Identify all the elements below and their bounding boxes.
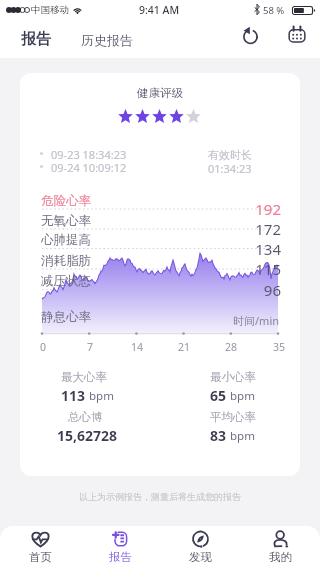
staticText: 时间/min <box>233 313 280 328</box>
staticText: 115 <box>235 259 281 279</box>
staticText: 192 <box>235 199 281 219</box>
button[interactable]: 发现 <box>160 526 240 569</box>
staticText: 15,62728 <box>57 426 118 445</box>
staticText: 报告 <box>21 30 51 49</box>
staticText: 113 <box>61 386 86 405</box>
staticText: 以上为示例报告，测量后将生成您的报告 <box>0 491 320 502</box>
staticText: 心肺提高 <box>41 232 91 248</box>
staticText: 09-24 10:09:12 <box>51 160 127 175</box>
staticText: 134 <box>235 239 281 259</box>
button[interactable]: 我的 <box>240 526 320 569</box>
staticText: 静息心率 <box>41 309 91 325</box>
staticText: 58 % <box>263 4 285 17</box>
button[interactable]: 日历 <box>279 17 315 53</box>
button[interactable]: 报告 <box>13 26 59 53</box>
staticText: 有效时长 <box>208 148 252 162</box>
staticText: 首页 <box>29 550 52 564</box>
staticText: 减压状态 <box>41 273 91 289</box>
button[interactable]: 报告 <box>80 526 160 569</box>
staticText: 172 <box>235 219 281 239</box>
staticText: 总心博 <box>68 410 103 424</box>
staticText: 83 <box>210 426 227 445</box>
staticText: 发现 <box>189 550 212 564</box>
staticText: 0 <box>31 340 55 354</box>
staticText: 最大心率 <box>61 370 107 384</box>
staticText: 危险心率 <box>41 193 91 209</box>
staticText: 01:34:23 <box>208 161 252 176</box>
staticText: 我的 <box>269 550 292 564</box>
staticText: 中国移动 <box>31 4 69 16</box>
staticText: 96 <box>235 280 281 300</box>
staticText: 平均心率 <box>210 410 256 424</box>
staticText: 消耗脂肪 <box>41 253 91 269</box>
staticText: bpm <box>89 388 114 404</box>
button[interactable]: 历史报告 <box>73 28 141 52</box>
staticText: 7 <box>78 340 102 354</box>
staticText: 21 <box>172 340 196 354</box>
staticText: 最小心率 <box>210 370 256 384</box>
staticText: 无氧心率 <box>41 213 91 229</box>
button[interactable]: 首页 <box>0 526 80 569</box>
staticText: 历史报告 <box>81 32 133 48</box>
staticText: bpm <box>230 388 255 404</box>
staticText: bpm <box>230 428 255 444</box>
staticText: 报告 <box>109 550 132 564</box>
staticText: 35 <box>267 340 291 354</box>
staticText: 65 <box>210 386 227 405</box>
staticText: 09-23 18:34:23 <box>51 147 127 162</box>
button[interactable]: 刷新 <box>232 17 268 53</box>
staticText: 14 <box>125 340 149 354</box>
staticText: 9:41 AM <box>139 3 180 17</box>
staticText: 健康评级 <box>20 86 300 100</box>
staticText: 28 <box>219 340 243 354</box>
